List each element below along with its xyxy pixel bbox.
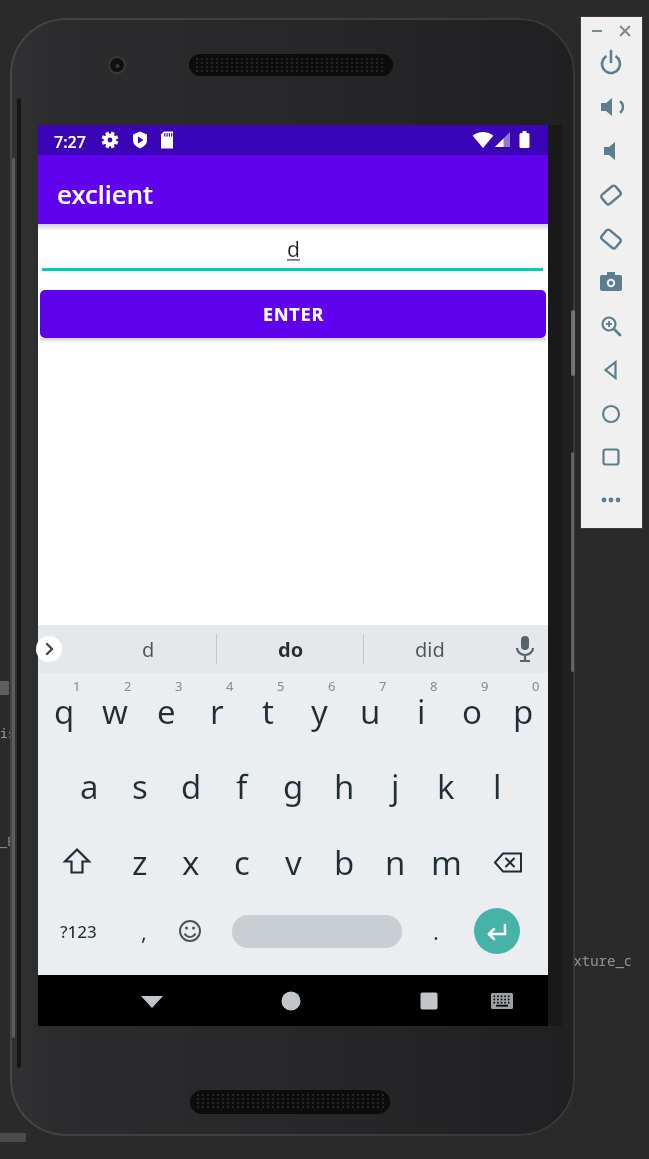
staticText: 7:27 bbox=[54, 131, 86, 153]
button[interactable]: z bbox=[115, 825, 165, 899]
button[interactable]: did bbox=[395, 625, 465, 673]
staticText: b bbox=[334, 840, 355, 885]
staticText: 2 bbox=[124, 677, 132, 695]
staticText: m bbox=[431, 840, 462, 885]
button[interactable]: v bbox=[268, 825, 318, 899]
staticText: g bbox=[283, 764, 304, 809]
staticText: e bbox=[157, 689, 176, 734]
button[interactable] bbox=[473, 825, 543, 900]
staticText: 8 bbox=[430, 677, 438, 695]
button[interactable]: y bbox=[294, 674, 344, 748]
button[interactable]: i bbox=[396, 674, 446, 748]
button[interactable] bbox=[597, 356, 625, 384]
staticText: k bbox=[437, 764, 455, 809]
button[interactable]: ENTER bbox=[40, 290, 546, 338]
button[interactable]: e bbox=[141, 674, 191, 748]
button[interactable]: . bbox=[411, 894, 461, 968]
staticText: 4 bbox=[226, 677, 234, 695]
staticText: 1 bbox=[73, 677, 81, 695]
button[interactable]: j bbox=[370, 749, 420, 823]
staticText: do bbox=[278, 636, 304, 663]
button[interactable]: , bbox=[119, 894, 169, 968]
button[interactable]: k bbox=[421, 749, 471, 823]
staticText: y bbox=[311, 689, 328, 734]
button[interactable] bbox=[597, 312, 625, 340]
button[interactable]: g bbox=[268, 749, 318, 823]
staticText: _E bbox=[0, 833, 15, 849]
button[interactable]: a bbox=[64, 749, 114, 823]
button[interactable]: s bbox=[115, 749, 165, 823]
button[interactable] bbox=[47, 825, 107, 900]
staticText: n bbox=[385, 840, 406, 885]
button[interactable]: m bbox=[421, 825, 471, 899]
staticText: 9 bbox=[481, 677, 489, 695]
button[interactable]: c bbox=[217, 825, 267, 899]
button[interactable]: u bbox=[345, 674, 395, 748]
button[interactable]: b bbox=[319, 825, 369, 899]
button[interactable]: r bbox=[192, 674, 242, 748]
staticText: p bbox=[513, 689, 534, 734]
staticText: d bbox=[142, 636, 155, 663]
button[interactable] bbox=[597, 486, 625, 514]
staticText: ENTER bbox=[263, 302, 324, 327]
staticText: l bbox=[493, 764, 502, 809]
button[interactable] bbox=[597, 225, 625, 253]
button[interactable]: w bbox=[90, 674, 140, 748]
staticText: 3 bbox=[175, 677, 183, 695]
button[interactable] bbox=[597, 137, 625, 165]
staticText: 5 bbox=[277, 677, 285, 695]
button[interactable] bbox=[269, 979, 313, 1023]
button[interactable]: f bbox=[217, 749, 267, 823]
button[interactable] bbox=[597, 268, 625, 296]
staticText: 7 bbox=[379, 677, 387, 695]
button[interactable] bbox=[597, 49, 625, 77]
staticText: a bbox=[80, 764, 99, 809]
staticText: i bbox=[417, 689, 426, 734]
button[interactable] bbox=[232, 915, 402, 948]
button[interactable]: d bbox=[166, 749, 216, 823]
button[interactable]: h bbox=[319, 749, 369, 823]
button[interactable]: q bbox=[39, 674, 89, 748]
staticText: d bbox=[287, 235, 300, 264]
button[interactable] bbox=[130, 979, 174, 1023]
staticText: x bbox=[182, 840, 200, 885]
staticText: o bbox=[462, 689, 482, 734]
staticText: exture_c bbox=[565, 951, 633, 970]
staticText: ?123 bbox=[60, 920, 97, 943]
staticText: v bbox=[285, 840, 302, 885]
staticText: exclient bbox=[57, 176, 153, 211]
button[interactable]: d bbox=[113, 625, 183, 673]
button[interactable] bbox=[36, 636, 62, 662]
button[interactable] bbox=[597, 181, 625, 209]
button[interactable]: x bbox=[166, 825, 216, 899]
staticText: is bbox=[0, 724, 16, 742]
staticText: 6 bbox=[328, 677, 336, 695]
staticText: c bbox=[234, 840, 250, 885]
button[interactable] bbox=[168, 901, 212, 961]
button[interactable] bbox=[597, 443, 625, 471]
button[interactable] bbox=[474, 908, 520, 954]
staticText: t bbox=[262, 689, 274, 734]
staticText: w bbox=[102, 689, 128, 734]
button[interactable] bbox=[482, 981, 522, 1021]
staticText: f bbox=[236, 764, 248, 809]
staticText: u bbox=[360, 689, 381, 734]
button[interactable]: l bbox=[472, 749, 522, 823]
button[interactable]: o bbox=[447, 674, 497, 748]
staticText: d bbox=[181, 764, 202, 809]
staticText: z bbox=[132, 840, 148, 885]
button[interactable]: p bbox=[498, 674, 548, 748]
staticText: did bbox=[415, 636, 445, 663]
button[interactable]: do bbox=[256, 625, 326, 673]
staticText: 0 bbox=[532, 677, 540, 695]
button[interactable] bbox=[407, 979, 451, 1023]
staticText: j bbox=[391, 764, 400, 809]
button[interactable] bbox=[597, 400, 625, 428]
button[interactable]: ?123 bbox=[52, 894, 104, 969]
button[interactable] bbox=[597, 93, 625, 121]
staticText: r bbox=[210, 689, 224, 734]
staticText: q bbox=[54, 689, 75, 734]
staticText: . bbox=[433, 916, 439, 946]
button[interactable]: t bbox=[243, 674, 293, 748]
button[interactable]: n bbox=[370, 825, 420, 899]
